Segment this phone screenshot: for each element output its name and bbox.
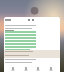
button[interactable]: Saved: [34, 65, 42, 72]
button[interactable]: Search: [22, 65, 30, 72]
button[interactable]: Profile: [47, 65, 55, 72]
button[interactable]: Home: [9, 65, 17, 72]
